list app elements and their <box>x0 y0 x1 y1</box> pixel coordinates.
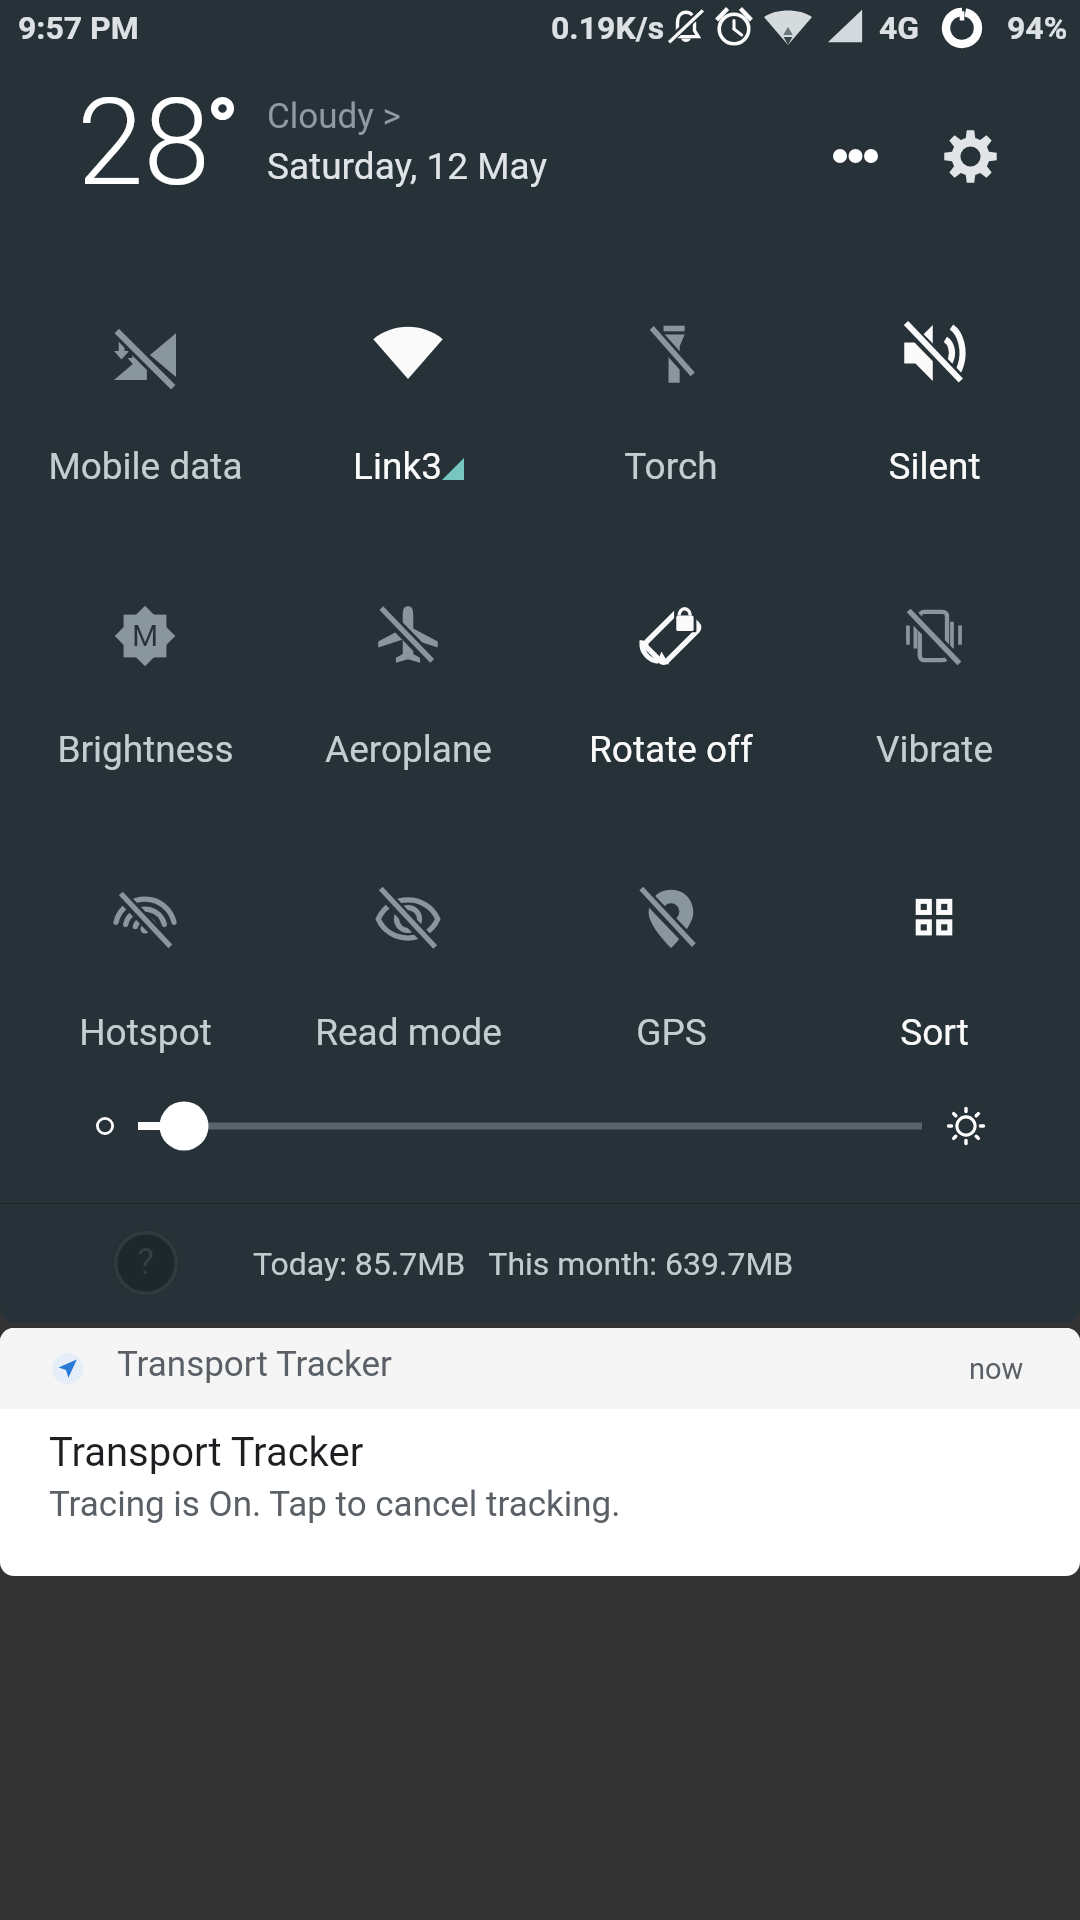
staticText: 4G <box>879 9 920 47</box>
button[interactable]: Settings <box>926 112 1014 200</box>
staticText: M <box>132 618 159 653</box>
button[interactable]: M <box>14 530 276 746</box>
staticText: 94% <box>1007 9 1068 47</box>
button[interactable]: Brightness slider <box>0 1096 1080 1156</box>
button[interactable]: More options <box>800 112 910 200</box>
button[interactable]: Transport Tracker <box>0 1328 1080 1576</box>
button[interactable]: Sort <box>803 813 1065 1029</box>
staticText: Mobile data <box>48 445 243 488</box>
staticText: Rotate off <box>589 728 753 771</box>
button[interactable]: Aeroplane <box>277 530 539 746</box>
button[interactable]: GPS <box>540 813 802 1029</box>
staticText: Tracing is On. Tap to cancel tracking. <box>49 1484 621 1525</box>
button[interactable]: Hotspot <box>14 813 276 1029</box>
staticText: GPS <box>636 1011 707 1054</box>
button[interactable]: Mobile data <box>14 247 276 463</box>
button[interactable]: Torch <box>540 247 802 463</box>
staticText: Transport Tracker <box>49 1429 364 1476</box>
staticText: Link3 <box>353 445 442 488</box>
button[interactable]: Rotate off <box>540 530 802 746</box>
staticText: Silent <box>888 445 981 488</box>
staticText: Aeroplane <box>325 728 492 771</box>
staticText: ? <box>137 1241 155 1283</box>
staticText: now <box>969 1352 1024 1386</box>
button[interactable]: Link3 <box>277 247 539 463</box>
button[interactable]: Help <box>113 1230 179 1296</box>
staticText: Torch <box>624 445 718 488</box>
staticText: 28 <box>77 73 211 214</box>
button[interactable]: Vibrate <box>803 530 1065 746</box>
staticText: Saturday, 12 May <box>267 145 547 188</box>
staticText: Sort <box>900 1011 969 1054</box>
staticText: 9:57 PM <box>18 9 139 47</box>
staticText: 0.19K/s <box>551 9 665 47</box>
staticText: Brightness <box>57 728 234 771</box>
staticText: Vibrate <box>876 728 993 771</box>
staticText: Hotspot <box>79 1011 212 1054</box>
button[interactable]: Silent <box>803 247 1065 463</box>
staticText: Cloudy > <box>267 96 401 137</box>
button[interactable]: Auto brightness <box>931 1096 1001 1156</box>
staticText: Today: 85.7MB This month: 639.7MB <box>253 1245 794 1283</box>
button[interactable]: Read mode <box>277 813 539 1029</box>
staticText: Read mode <box>315 1011 502 1054</box>
staticText: Transport Tracker <box>117 1344 392 1385</box>
